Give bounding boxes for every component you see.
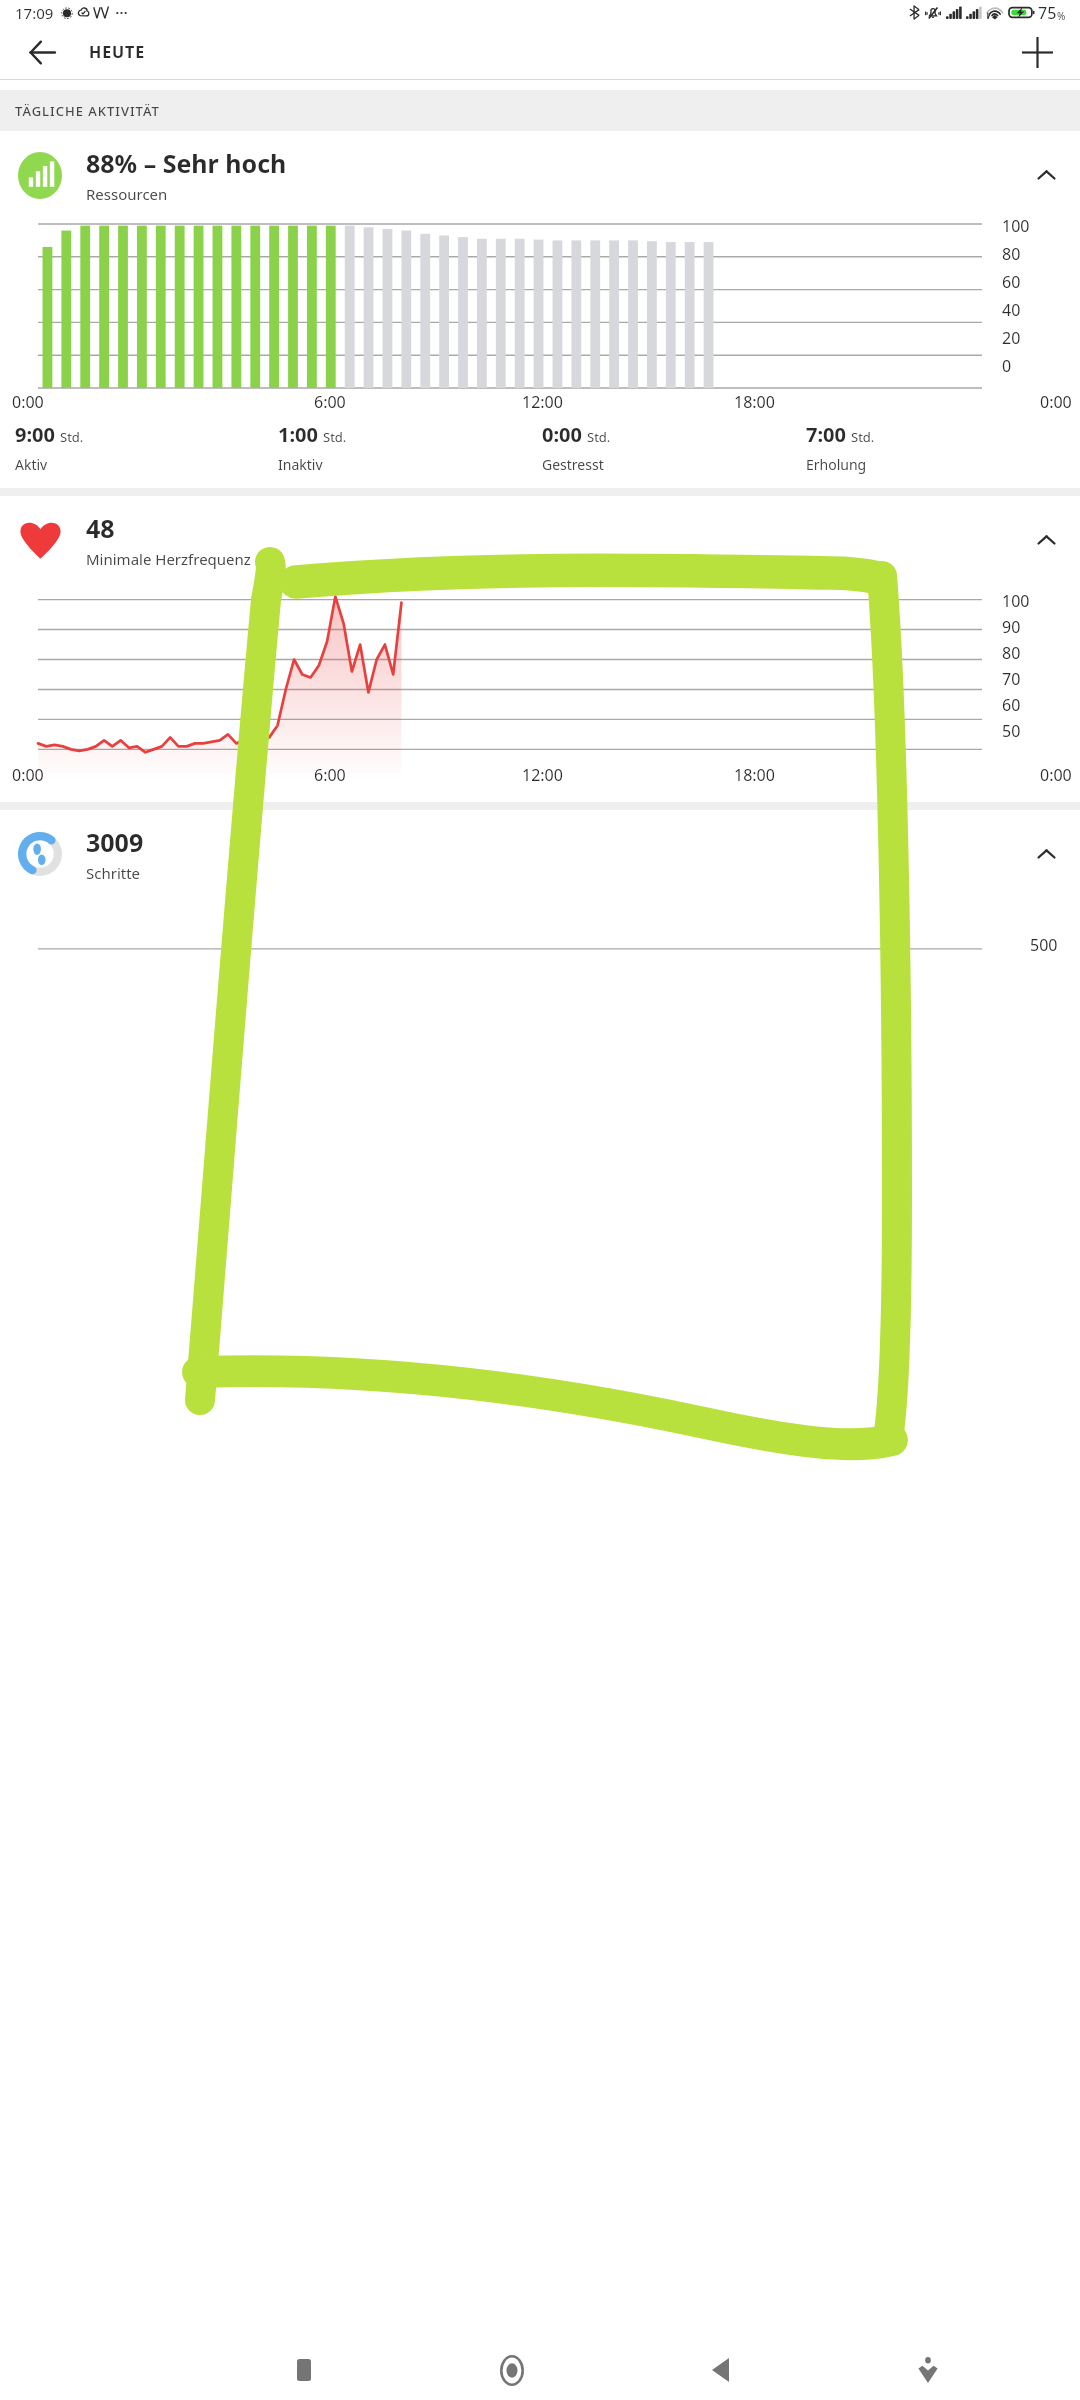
other: Einklappen	[1026, 155, 1066, 195]
staticText: Std.	[851, 428, 875, 446]
staticText: 100	[1002, 590, 1030, 612]
staticText: Std.	[60, 428, 84, 446]
button[interactable]: Startseite	[408, 2340, 616, 2400]
staticText: 1:00	[278, 421, 318, 448]
staticText: 75	[1038, 2, 1057, 24]
staticText: Schritte	[86, 863, 141, 883]
staticText: Ressourcen	[86, 184, 168, 204]
button[interactable]: 48	[0, 496, 1080, 584]
staticText: 12:00	[522, 391, 563, 413]
staticText: HEUTE	[89, 41, 145, 63]
staticText: 48	[86, 511, 115, 545]
staticText: 9:00	[15, 421, 55, 448]
staticText: TÄGLICHE AKTIVITÄT	[15, 102, 160, 120]
staticText: 6:00	[314, 764, 346, 786]
staticText: 50	[1002, 720, 1021, 742]
staticText: 90	[1002, 616, 1021, 638]
staticText: 17:09	[15, 3, 54, 23]
staticText: 60	[1002, 271, 1021, 293]
button[interactable]: 88% – Sehr hoch	[0, 131, 1080, 219]
other: Einklappen	[1026, 834, 1066, 874]
staticText: %	[1057, 9, 1066, 23]
staticText: 6:00	[314, 391, 346, 413]
staticText: 0:00	[12, 764, 44, 786]
staticText: 0:00	[1040, 764, 1072, 786]
button[interactable]: Zurück	[20, 30, 64, 74]
button[interactable]: 3009	[0, 810, 1080, 898]
button[interactable]: Zurück	[616, 2340, 824, 2400]
staticText: 7:00	[806, 421, 846, 448]
staticText: Gestresst	[542, 455, 604, 474]
staticText: 70	[1002, 668, 1021, 690]
staticText: 0:00	[12, 391, 44, 413]
staticText: Std.	[323, 428, 347, 446]
staticText: 100	[1002, 215, 1030, 237]
button[interactable]: Zuletzt verwendet	[200, 2340, 408, 2400]
staticText: 80	[1002, 642, 1021, 664]
staticText: Aktiv	[15, 455, 48, 474]
staticText: Std.	[587, 428, 611, 446]
staticText: 80	[1002, 243, 1021, 265]
staticText: 0	[1002, 355, 1012, 377]
staticText: Minimale Herzfrequenz	[86, 549, 251, 569]
other: Einklappen	[1026, 520, 1066, 560]
staticText: 18:00	[734, 764, 775, 786]
staticText: Inaktiv	[278, 455, 323, 474]
staticText: 20	[1002, 327, 1021, 349]
staticText: 88% – Sehr hoch	[86, 146, 287, 180]
staticText: 12:00	[522, 764, 563, 786]
button[interactable]: Hinzufügen	[1014, 29, 1060, 75]
staticText: 0:00	[542, 421, 582, 448]
staticText: 500	[1030, 934, 1058, 956]
staticText: 3009	[86, 825, 144, 859]
staticText: 60	[1002, 694, 1021, 716]
button[interactable]: Tastatur ausblenden	[824, 2340, 1032, 2400]
staticText: Erholung	[806, 455, 867, 474]
staticText: 40	[1002, 299, 1021, 321]
staticText: 0:00	[1040, 391, 1072, 413]
staticText: 18:00	[734, 391, 775, 413]
